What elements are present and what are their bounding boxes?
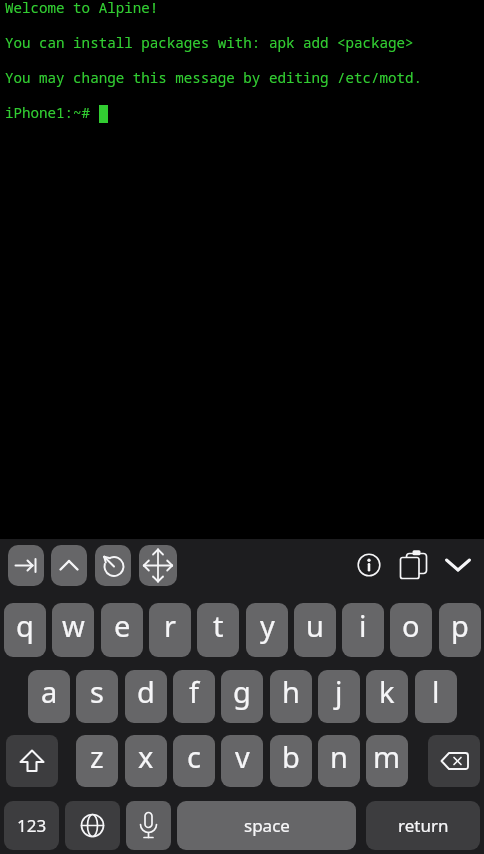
button[interactable]: y xyxy=(246,603,288,657)
button[interactable]: e xyxy=(101,603,143,657)
staticText: r xyxy=(164,606,176,645)
button[interactable] xyxy=(126,801,171,850)
button[interactable]: u xyxy=(294,603,336,657)
staticText: return xyxy=(398,814,449,837)
button[interactable]: x xyxy=(125,735,167,787)
button[interactable]: p xyxy=(439,603,481,657)
button[interactable] xyxy=(8,545,44,586)
button[interactable]: i xyxy=(342,603,384,657)
button[interactable]: s xyxy=(76,670,118,723)
staticText: g xyxy=(233,672,251,711)
button[interactable]: j xyxy=(318,670,360,723)
staticText: x xyxy=(138,737,154,776)
staticText: You may change this message by editing /… xyxy=(5,68,423,87)
button[interactable] xyxy=(444,553,472,577)
button[interactable]: q xyxy=(4,603,46,657)
button[interactable]: v xyxy=(221,735,263,787)
staticText: l xyxy=(432,672,440,711)
staticText: u xyxy=(306,606,324,645)
staticText: q xyxy=(16,606,34,645)
button[interactable]: h xyxy=(270,670,312,723)
button[interactable] xyxy=(6,735,58,787)
staticText: p xyxy=(451,606,469,645)
button[interactable] xyxy=(428,735,480,787)
staticText: m xyxy=(373,737,401,776)
button[interactable]: d xyxy=(125,670,167,723)
staticText: 123 xyxy=(17,814,47,837)
staticText: Welcome to Alpine! xyxy=(5,0,159,17)
button[interactable]: k xyxy=(366,670,408,723)
button[interactable]: o xyxy=(390,603,432,657)
button[interactable]: a xyxy=(28,670,70,723)
button[interactable]: 123 xyxy=(4,801,59,850)
button[interactable]: b xyxy=(270,735,312,787)
staticText: v xyxy=(235,737,250,776)
button[interactable] xyxy=(398,548,430,582)
button[interactable]: f xyxy=(173,670,215,723)
button[interactable]: t xyxy=(197,603,239,657)
staticText: j xyxy=(335,672,343,711)
button[interactable] xyxy=(139,545,177,586)
staticText: y xyxy=(260,606,275,645)
staticText: c xyxy=(187,737,201,776)
button[interactable]: g xyxy=(221,670,263,723)
button[interactable] xyxy=(51,545,87,586)
staticText: d xyxy=(137,672,155,711)
staticText: n xyxy=(330,737,348,776)
button[interactable]: return xyxy=(366,801,480,850)
button[interactable]: r xyxy=(149,603,191,657)
staticText: space xyxy=(244,814,290,837)
staticText: i xyxy=(359,606,367,645)
staticText: k xyxy=(379,672,395,711)
staticText: s xyxy=(90,672,104,711)
button[interactable]: c xyxy=(173,735,215,787)
staticText: You can install packages with: apk add <… xyxy=(5,33,414,52)
button[interactable]: z xyxy=(76,735,118,787)
staticText: t xyxy=(213,606,224,645)
button[interactable] xyxy=(356,552,382,578)
button[interactable] xyxy=(65,801,120,850)
staticText: w xyxy=(62,606,85,645)
staticText: z xyxy=(90,737,104,776)
staticText: e xyxy=(114,606,131,645)
button[interactable] xyxy=(95,545,131,586)
staticText: f xyxy=(189,672,199,711)
staticText: h xyxy=(282,672,300,711)
staticText: a xyxy=(41,672,58,711)
staticText: o xyxy=(402,606,420,645)
button[interactable]: w xyxy=(52,603,94,657)
button[interactable]: n xyxy=(318,735,360,787)
button[interactable]: m xyxy=(366,735,408,787)
button[interactable]: space xyxy=(177,801,356,850)
staticText: b xyxy=(282,737,300,776)
staticText: iPhone1:~# xyxy=(5,103,91,122)
button[interactable]: l xyxy=(415,670,457,723)
